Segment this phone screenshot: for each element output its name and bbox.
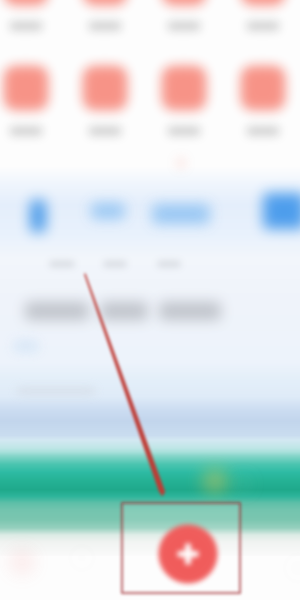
button[interactable]: Add bbox=[0, 0, 300, 600]
